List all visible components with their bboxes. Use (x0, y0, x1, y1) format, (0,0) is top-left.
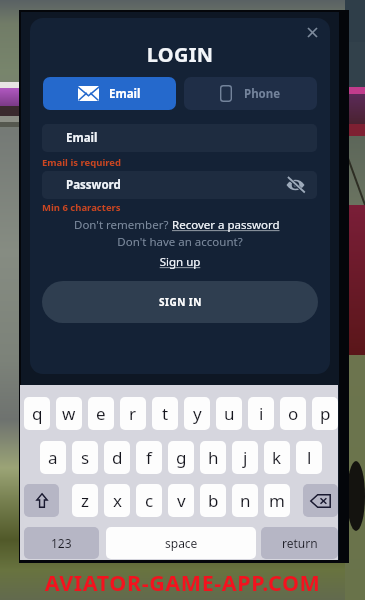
staticText: m (269, 489, 285, 512)
button[interactable]: s (72, 441, 98, 474)
button[interactable]: k (264, 441, 290, 474)
button[interactable]: o (280, 397, 306, 430)
button[interactable]: z (72, 484, 98, 517)
button[interactable]: Sign up (30, 254, 330, 270)
button[interactable]: f (136, 441, 162, 474)
button[interactable]: Email (43, 77, 176, 110)
button[interactable]: SIGN IN (42, 281, 318, 323)
button[interactable]: Recover a password (172, 217, 280, 233)
button[interactable]: t (152, 397, 178, 430)
button[interactable]: Show password (283, 173, 307, 197)
staticText: u (224, 402, 235, 425)
button[interactable]: b (200, 484, 226, 517)
staticText: a (48, 446, 58, 469)
button[interactable]: d (104, 441, 130, 474)
staticText: p (320, 402, 331, 425)
staticText: Password (66, 177, 121, 193)
staticText: SIGN IN (159, 295, 202, 309)
button[interactable]: a (40, 441, 66, 474)
staticText: z (81, 489, 89, 512)
staticText: v (177, 489, 186, 512)
staticText: 123 (51, 535, 72, 551)
staticText: g (176, 446, 187, 469)
staticText: e (96, 402, 106, 425)
staticText: t (162, 402, 169, 425)
staticText: r (129, 402, 137, 425)
button[interactable]: w (56, 397, 82, 430)
button[interactable]: x (104, 484, 130, 517)
staticText: Email (66, 130, 98, 146)
button[interactable]: Close (298, 18, 326, 46)
button[interactable]: q (24, 397, 50, 430)
staticText: x (113, 489, 122, 512)
button[interactable]: m (264, 484, 290, 517)
button[interactable]: y (184, 397, 210, 430)
staticText: Phone (244, 86, 281, 102)
button[interactable]: p (312, 397, 338, 430)
button[interactable]: r (120, 397, 146, 430)
staticText: LOGIN (30, 41, 330, 68)
button[interactable]: return (261, 527, 338, 559)
button[interactable]: 123 (24, 527, 99, 559)
button[interactable]: space (106, 527, 256, 559)
button[interactable]: h (200, 441, 226, 474)
staticText: j (243, 446, 248, 469)
staticText: Email is required (42, 156, 121, 169)
staticText: f (146, 446, 152, 469)
staticText: Email (109, 86, 141, 102)
button[interactable]: j (232, 441, 258, 474)
button[interactable]: Shift (24, 484, 59, 517)
staticText: return (282, 535, 318, 551)
button[interactable]: g (168, 441, 194, 474)
button[interactable]: e (88, 397, 114, 430)
staticText: h (208, 446, 219, 469)
staticText: Min 6 characters (42, 201, 121, 214)
staticText: o (288, 402, 299, 425)
staticText: Don't have an account? (30, 234, 330, 250)
button[interactable]: c (136, 484, 162, 517)
staticText: AVIATOR-GAME-APP.COM (0, 568, 365, 597)
staticText: s (81, 446, 90, 469)
staticText: l (307, 446, 312, 469)
staticText: i (259, 402, 264, 425)
staticText: n (240, 489, 251, 512)
staticText: w (62, 402, 76, 425)
button[interactable]: v (168, 484, 194, 517)
button[interactable]: i (248, 397, 274, 430)
staticText: space (165, 535, 198, 551)
staticText: Don't remember? (74, 217, 172, 233)
button[interactable]: Email (42, 124, 317, 152)
button[interactable]: Password (42, 171, 317, 199)
staticText: k (272, 446, 282, 469)
button[interactable]: Backspace (303, 484, 338, 517)
staticText: d (112, 446, 123, 469)
button[interactable]: u (216, 397, 242, 430)
staticText: y (193, 402, 202, 425)
button[interactable]: n (232, 484, 258, 517)
button[interactable]: Phone (184, 77, 317, 110)
staticText: b (208, 489, 219, 512)
staticText: c (145, 489, 154, 512)
staticText: q (32, 402, 43, 425)
button[interactable]: l (296, 441, 322, 474)
